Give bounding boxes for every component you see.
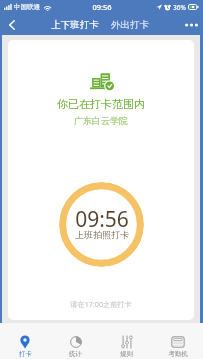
staticText: 你已在打卡范围内	[57, 97, 145, 111]
staticText: 上下班打卡	[51, 19, 99, 31]
button[interactable]: 09:56	[59, 182, 144, 267]
staticText: 请在17:00之前打卡	[70, 299, 132, 309]
staticText: 中国联通	[14, 3, 40, 11]
button[interactable]: 外出打卡	[109, 14, 151, 35]
staticText: 09:56	[92, 2, 112, 12]
staticText: 09:56	[75, 205, 129, 234]
button[interactable]: More options	[179, 14, 203, 35]
button[interactable]: 打卡	[0, 323, 50, 359]
button[interactable]: 考勤机	[152, 323, 203, 359]
staticText: 上班拍照打卡	[75, 229, 129, 240]
button[interactable]: 规则	[101, 323, 152, 359]
staticText: 统计	[69, 350, 82, 358]
staticText: 36%	[173, 3, 186, 12]
staticText: 广东白云学院	[74, 115, 128, 126]
staticText: 外出打卡	[111, 19, 149, 31]
button[interactable]: 上下班打卡	[49, 14, 101, 35]
staticText: 规则	[120, 350, 133, 358]
staticText: 打卡	[19, 350, 32, 358]
button[interactable]: 统计	[50, 323, 101, 359]
staticText: 考勤机	[168, 350, 188, 358]
button[interactable]: Back	[0, 14, 24, 35]
